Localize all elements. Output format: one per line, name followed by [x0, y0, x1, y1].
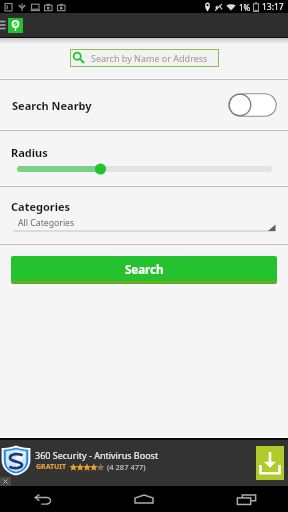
- staticText: Radius: [11, 145, 48, 160]
- button[interactable]: All Categories: [0, 214, 288, 236]
- button[interactable]: Search: [11, 256, 277, 284]
- button[interactable]: Install: [256, 446, 284, 480]
- button[interactable]: 360 Security - Antivirus Boost: [0, 440, 288, 486]
- staticText: 360 Security - Antivirus Boost: [35, 449, 159, 461]
- staticText: All Categories: [18, 217, 75, 229]
- staticText: Search: [125, 262, 164, 278]
- button[interactable]: Menu: [0, 13, 8, 37]
- staticText: GRATUIT: [36, 462, 67, 472]
- button[interactable]: Back: [27, 486, 59, 512]
- staticText: 1%: [239, 2, 251, 13]
- staticText: (4 287 477): [107, 462, 146, 472]
- staticText: Categories: [11, 199, 71, 214]
- button[interactable]: Home: [8, 18, 23, 33]
- staticText: Search by Name or Address: [91, 52, 208, 64]
- button[interactable]: Search Nearby: [0, 80, 288, 130]
- button[interactable]: Home: [128, 486, 160, 512]
- staticText: Search Nearby: [12, 98, 92, 113]
- button[interactable]: Recent apps: [230, 486, 262, 512]
- button[interactable]: Close ad: [0, 477, 11, 486]
- staticText: 13:17: [262, 1, 284, 13]
- button[interactable]: Search by Name or Address: [70, 49, 219, 67]
- button[interactable]: Radius slider: [0, 159, 288, 179]
- button[interactable]: Search Nearby toggle, off: [228, 93, 277, 117]
